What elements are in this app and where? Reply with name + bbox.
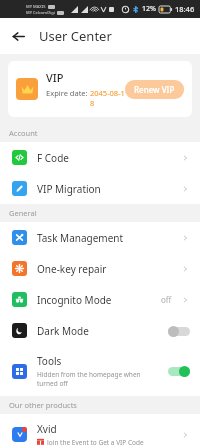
staticText: VIP Migration — [37, 182, 101, 196]
staticText: 18:46 — [175, 4, 195, 14]
staticText: User Center — [39, 27, 112, 45]
button[interactable]: One-key repair — [0, 253, 200, 284]
staticText: One-key repair — [37, 262, 107, 276]
staticText: Hidden from the homepage when turned off — [37, 370, 141, 388]
staticText: Dark Mode — [37, 324, 89, 338]
staticText: Incognito Mode — [37, 293, 112, 307]
staticText: MY MAXIS — [26, 4, 46, 9]
staticText: Expire date: — [46, 88, 90, 98]
staticText: F Code — [37, 151, 69, 165]
button[interactable]: Dark Mode — [0, 315, 200, 346]
button[interactable]: VIP — [8, 61, 192, 117]
staticText: General — [9, 208, 37, 218]
button[interactable]: F Code — [0, 142, 200, 173]
button[interactable]: Toggle on — [168, 365, 190, 377]
staticText: off — [161, 294, 172, 305]
staticText: 2045-08-18 — [90, 88, 125, 108]
staticText: Our other products — [9, 400, 77, 410]
staticText: Join the Event to Get a VIP Code — [47, 438, 144, 445]
staticText: Renew VIP — [134, 84, 175, 95]
button[interactable]: Task Management — [0, 222, 200, 253]
button[interactable]: Renew VIP — [125, 80, 184, 99]
button[interactable]: Toggle off — [168, 325, 190, 337]
button[interactable]: Tools — [0, 346, 200, 396]
button[interactable]: VIP Migration — [0, 173, 200, 204]
staticText: MY CelcomDigi — [26, 10, 55, 15]
staticText: 12% — [142, 4, 156, 14]
staticText: VIP — [46, 70, 64, 85]
staticText: Xvid — [37, 422, 57, 436]
staticText: Account — [9, 128, 38, 138]
staticText: Task Management — [37, 231, 124, 245]
button[interactable]: Back — [0, 18, 36, 54]
button[interactable]: Xvid — [0, 414, 200, 445]
staticText: Tools — [37, 354, 62, 368]
button[interactable]: Incognito Mode — [0, 284, 200, 315]
